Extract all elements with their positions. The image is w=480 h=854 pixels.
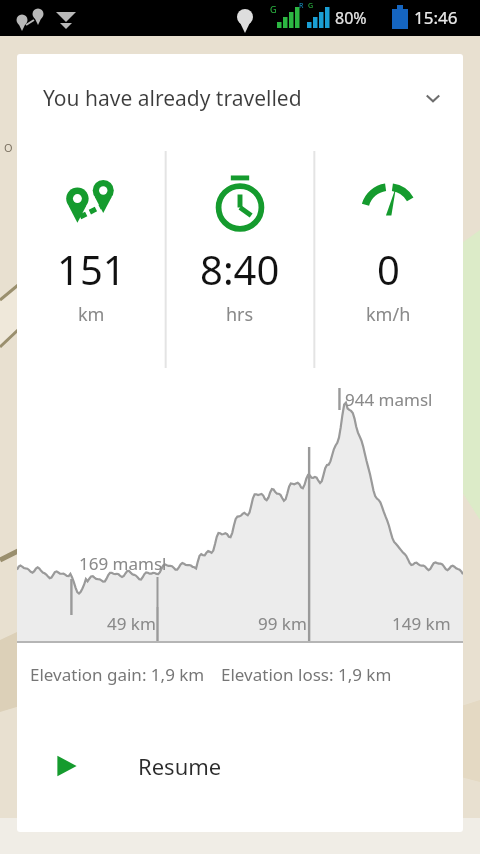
- staticText: You have already travelled: [43, 84, 302, 113]
- staticText: O: [4, 140, 13, 155]
- staticText: Elevation loss: 1,9 km: [221, 663, 392, 686]
- staticText: 80%: [335, 7, 367, 29]
- staticText: 49 km: [107, 612, 156, 635]
- staticText: G: [308, 1, 314, 11]
- button[interactable]: 0: [314, 142, 463, 376]
- staticText: 8:40: [200, 242, 280, 296]
- staticText: G: [270, 3, 277, 15]
- button[interactable]: You have already travelled: [17, 54, 463, 142]
- staticText: hrs: [226, 302, 254, 327]
- button[interactable]: Resume: [17, 722, 463, 810]
- staticText: km/h: [366, 302, 411, 327]
- staticText: R: [299, 1, 304, 11]
- staticText: 169 mamsl: [79, 552, 167, 575]
- staticText: 15:46: [414, 6, 458, 29]
- staticText: km: [78, 302, 105, 327]
- staticText: 149 km: [392, 612, 451, 635]
- staticText: Elevation gain: 1,9 km: [30, 663, 205, 686]
- staticText: 0: [377, 242, 400, 296]
- staticText: 944 mamsl: [345, 388, 433, 411]
- staticText: Resume: [138, 751, 222, 781]
- staticText: 151: [57, 242, 126, 296]
- button[interactable]: 8:40: [165, 142, 314, 376]
- button[interactable]: Collapse: [409, 74, 457, 122]
- staticText: 99 km: [258, 612, 307, 635]
- button[interactable]: 151: [17, 142, 165, 376]
